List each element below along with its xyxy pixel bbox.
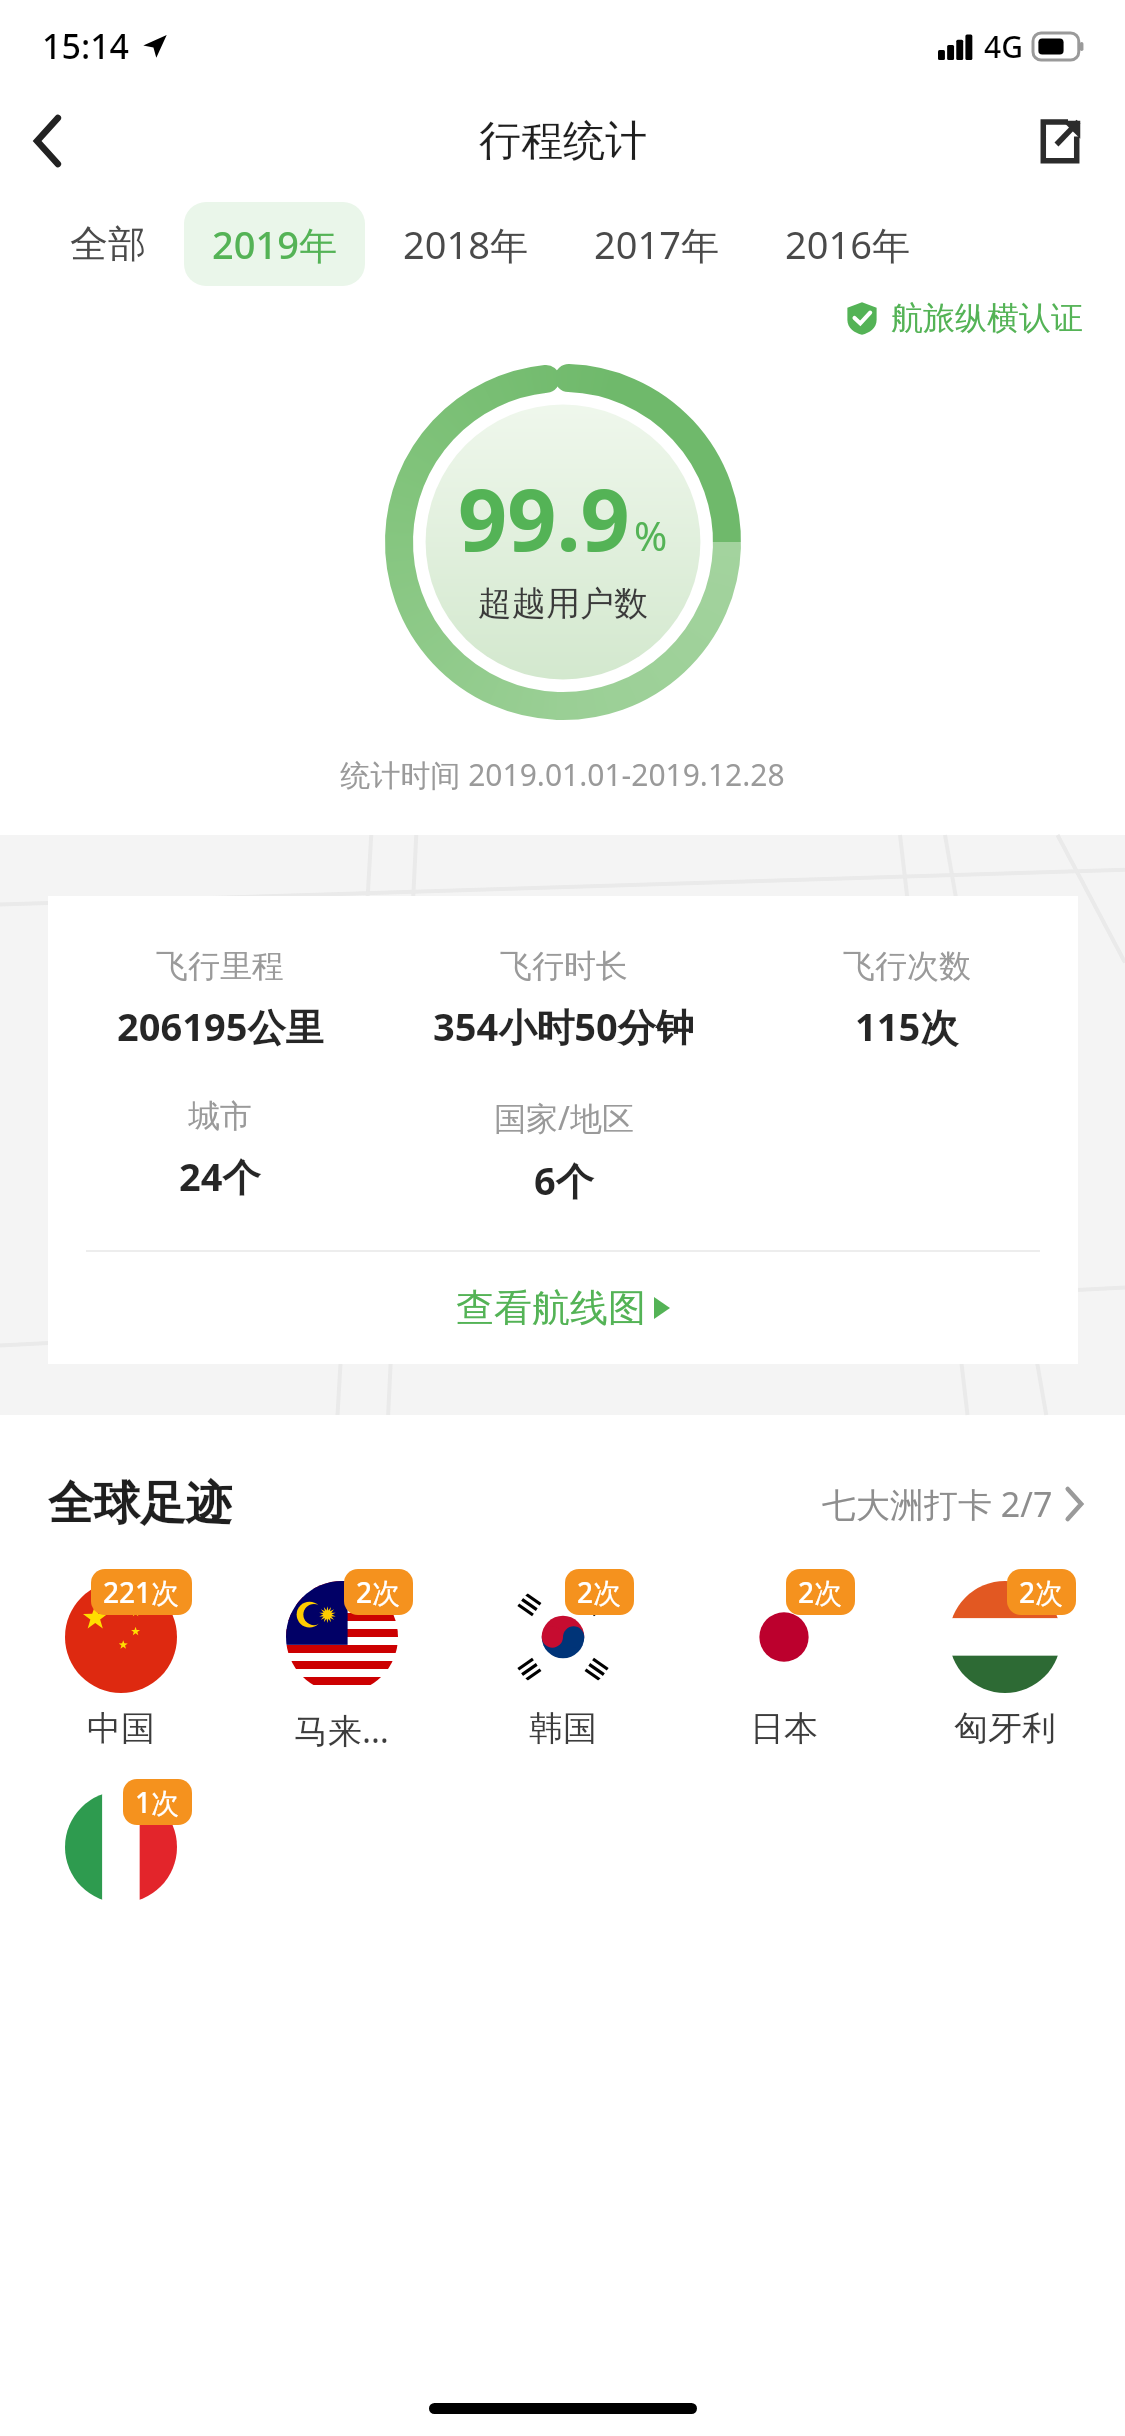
staticText: 2017年 [594, 218, 719, 270]
button[interactable]: 2次 [894, 1569, 1115, 1750]
button[interactable]: 分享 [1017, 98, 1103, 184]
staticText: 354小时50分钟 [433, 1000, 694, 1052]
button[interactable]: 2次 [452, 1569, 673, 1750]
staticText: 韩国 [529, 1707, 597, 1750]
button[interactable]: 2次 [231, 1569, 452, 1753]
staticText: 城市 [188, 1096, 252, 1136]
staticText: 统计时间 2019.01.01-2019.12.28 [0, 754, 1125, 795]
staticText: 2018年 [403, 218, 528, 270]
staticText: 国家/地区 [494, 1096, 634, 1140]
button[interactable]: 221次 [10, 1569, 231, 1750]
button[interactable]: 2018年 [375, 202, 556, 286]
button[interactable]: 2017年 [566, 202, 747, 286]
staticText: 1次 [135, 1783, 180, 1821]
staticText: 匈牙利 [954, 1707, 1056, 1750]
staticText: 飞行时长 [500, 946, 628, 986]
staticText: 全部 [70, 220, 146, 268]
staticText: 99.9 [458, 459, 630, 576]
button[interactable]: 2019年 [184, 202, 365, 286]
button[interactable]: 查看航线图 [48, 1252, 1078, 1364]
staticText: 15:14 [42, 23, 130, 69]
button[interactable]: 返回 [0, 93, 96, 189]
staticText: 中国 [87, 1707, 155, 1750]
staticText: 日本 [750, 1707, 818, 1750]
staticText: 2019年 [212, 218, 337, 270]
staticText: 24个 [179, 1150, 261, 1202]
button[interactable]: 2016年 [757, 202, 938, 286]
staticText: 6个 [534, 1154, 594, 1206]
button[interactable]: 七大洲打卡 2/7 [822, 1481, 1083, 1527]
staticText: 飞行次数 [843, 946, 971, 986]
button[interactable]: 全部 [42, 204, 174, 284]
staticText: 206195公里 [117, 1000, 324, 1052]
button[interactable]: 2次 [673, 1569, 894, 1750]
staticText: 2016年 [785, 218, 910, 270]
staticText: % [634, 508, 668, 562]
staticText: 2次 [798, 1573, 843, 1611]
staticText: 飞行里程 [156, 946, 284, 986]
staticText: 马来… [294, 1707, 389, 1753]
button[interactable]: 航旅纵横认证 [845, 298, 1083, 338]
staticText: 查看航线图 [456, 1284, 646, 1332]
staticText: 行程统计 [479, 115, 647, 168]
staticText: 全球足迹 [48, 1475, 232, 1533]
button[interactable]: 1次 [10, 1779, 231, 1903]
staticText: 航旅纵横认证 [891, 298, 1083, 338]
staticText: 2次 [356, 1573, 401, 1611]
staticText: 115次 [855, 1000, 959, 1052]
staticText: 221次 [103, 1573, 180, 1611]
staticText: 2次 [577, 1573, 622, 1611]
staticText: 七大洲打卡 2/7 [822, 1481, 1053, 1527]
staticText: 2次 [1019, 1573, 1064, 1611]
staticText: 超越用户数 [478, 582, 648, 625]
staticText: 4G [984, 26, 1023, 67]
